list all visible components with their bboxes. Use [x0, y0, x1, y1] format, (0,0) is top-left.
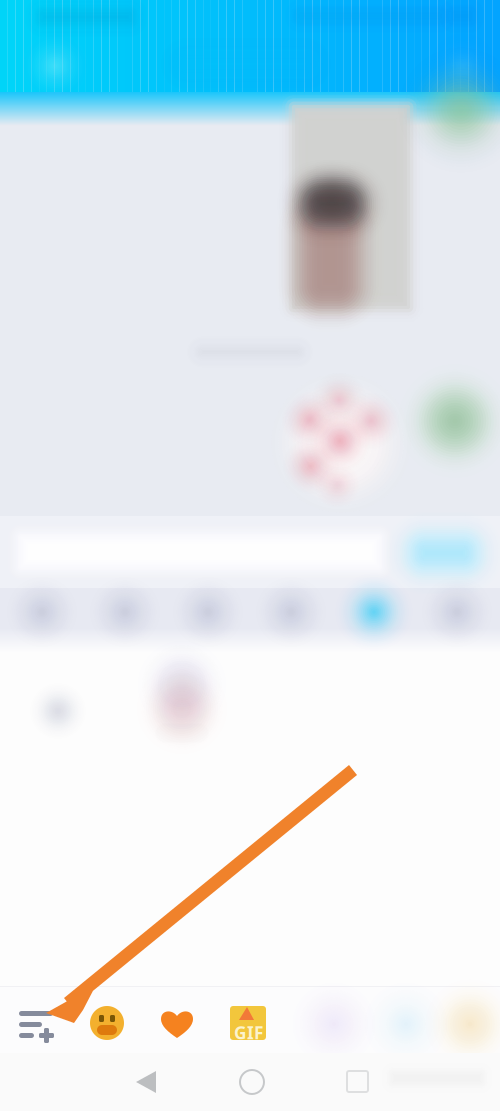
button[interactable]: Stickers — [346, 590, 402, 636]
button[interactable]: Recent apps — [344, 1068, 372, 1096]
button[interactable]: Back — [130, 1068, 166, 1096]
button[interactable]: Sticker pack — [438, 1000, 500, 1048]
staticText: GIF — [234, 1021, 264, 1044]
button[interactable]: Recent stickers — [38, 688, 84, 734]
button[interactable]: Emoji — [86, 1002, 128, 1044]
button[interactable]: Input tool — [97, 590, 153, 636]
button[interactable]: Sticker pack — [302, 1000, 366, 1048]
button[interactable]: Back — [22, 38, 84, 96]
button[interactable]: Favourite stickers — [156, 1006, 198, 1042]
button[interactable]: More options — [430, 38, 492, 96]
button[interactable]: Input tool — [429, 590, 485, 636]
button[interactable]: Send — [402, 530, 486, 576]
button[interactable]: Sticker — [142, 660, 222, 746]
button[interactable]: Home — [236, 1066, 268, 1098]
button[interactable]: Input tool — [180, 590, 236, 636]
button[interactable]: Input tool — [263, 590, 319, 636]
button[interactable]: Sticker pack — [374, 1000, 438, 1048]
button[interactable]: GIF — [226, 1002, 270, 1044]
button[interactable]: Sticker list — [10, 1000, 64, 1050]
button[interactable]: Input tool — [14, 590, 70, 636]
